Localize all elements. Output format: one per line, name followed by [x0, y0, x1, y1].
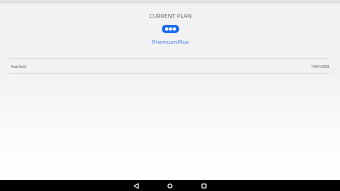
button[interactable]: Home [153, 180, 187, 191]
staticText: CURRENT PLAN [149, 12, 192, 20]
button[interactable]: Recent apps [187, 180, 221, 191]
button[interactable]: Paid Until [0, 59, 340, 73]
staticText: PremiumPlus [152, 38, 189, 46]
staticText: Paid Until [11, 64, 27, 68]
button[interactable]: Back [119, 180, 153, 191]
staticText: 19/01/2008 [311, 64, 330, 69]
button[interactable]: CURRENT PLAN [0, 12, 340, 46]
